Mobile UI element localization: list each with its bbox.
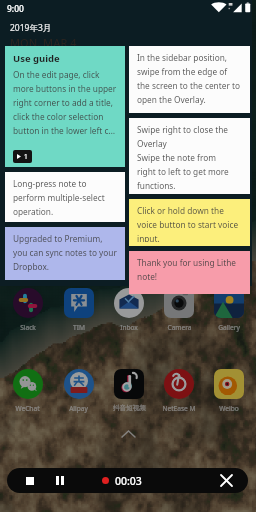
staticText: 1 <box>24 152 28 161</box>
button[interactable]: TIM <box>53 288 104 332</box>
staticText: 9:00 <box>7 3 24 15</box>
staticText: WeChat <box>15 404 40 413</box>
staticText: Long-press note to perform multiple-sele… <box>13 178 117 217</box>
staticText: 抖音短视频 <box>113 404 146 412</box>
staticText: Slack <box>20 323 36 332</box>
staticText: On the edit page, click more buttons in … <box>13 69 117 136</box>
button[interactable]: WeChat <box>2 369 53 413</box>
button[interactable]: Gallery <box>204 288 254 332</box>
staticText: Weibo <box>219 404 239 413</box>
staticText: Camera <box>167 323 192 332</box>
button[interactable]: Stop recording <box>16 468 44 493</box>
staticText: Gallery <box>218 323 240 332</box>
staticText: Swipe right to close the Overlay Swipe t… <box>137 124 242 190</box>
staticText: Use guide <box>13 52 60 65</box>
button[interactable]: Use guide <box>5 46 125 167</box>
staticText: Alipay <box>69 404 88 413</box>
staticText: Inbox <box>120 323 138 332</box>
button[interactable]: Swipe right to close the Overlay Swipe t… <box>129 118 250 194</box>
staticText: TIM <box>73 323 85 332</box>
button[interactable]: Pause recording <box>45 468 74 493</box>
other: Play voice note <box>17 152 28 161</box>
button[interactable]: Weibo <box>204 369 254 413</box>
button[interactable]: Camera <box>154 288 204 332</box>
staticText: MON, MAR 4 <box>10 35 77 50</box>
staticText: NetEase M <box>162 404 196 413</box>
staticText: Upgraded to Premium, you can sync notes … <box>13 233 117 272</box>
staticText: Click or hold down the voice button to s… <box>137 205 242 242</box>
button[interactable]: Click or hold down the voice button to s… <box>129 199 250 246</box>
staticText: 00:03 <box>115 474 142 488</box>
button[interactable]: Inbox <box>104 288 154 332</box>
button[interactable]: Upgraded to Premium, you can sync notes … <box>5 227 125 280</box>
button[interactable]: NetEase M <box>154 369 204 413</box>
button[interactable]: Close recorder <box>212 468 240 493</box>
staticText: 2019年3月 <box>10 22 52 34</box>
staticText: Thank you for using Lithe note! <box>137 257 242 282</box>
staticText: In the sidebar position, swipe from the … <box>137 52 242 105</box>
button[interactable]: In the sidebar position, swipe from the … <box>129 46 250 113</box>
button[interactable]: Alipay <box>53 369 104 413</box>
button[interactable]: 抖音短视频 <box>104 369 154 412</box>
button[interactable]: Thank you for using Lithe note! <box>129 251 250 294</box>
button[interactable]: Long-press note to perform multiple-sele… <box>5 172 125 222</box>
button[interactable]: Slack <box>2 288 53 332</box>
